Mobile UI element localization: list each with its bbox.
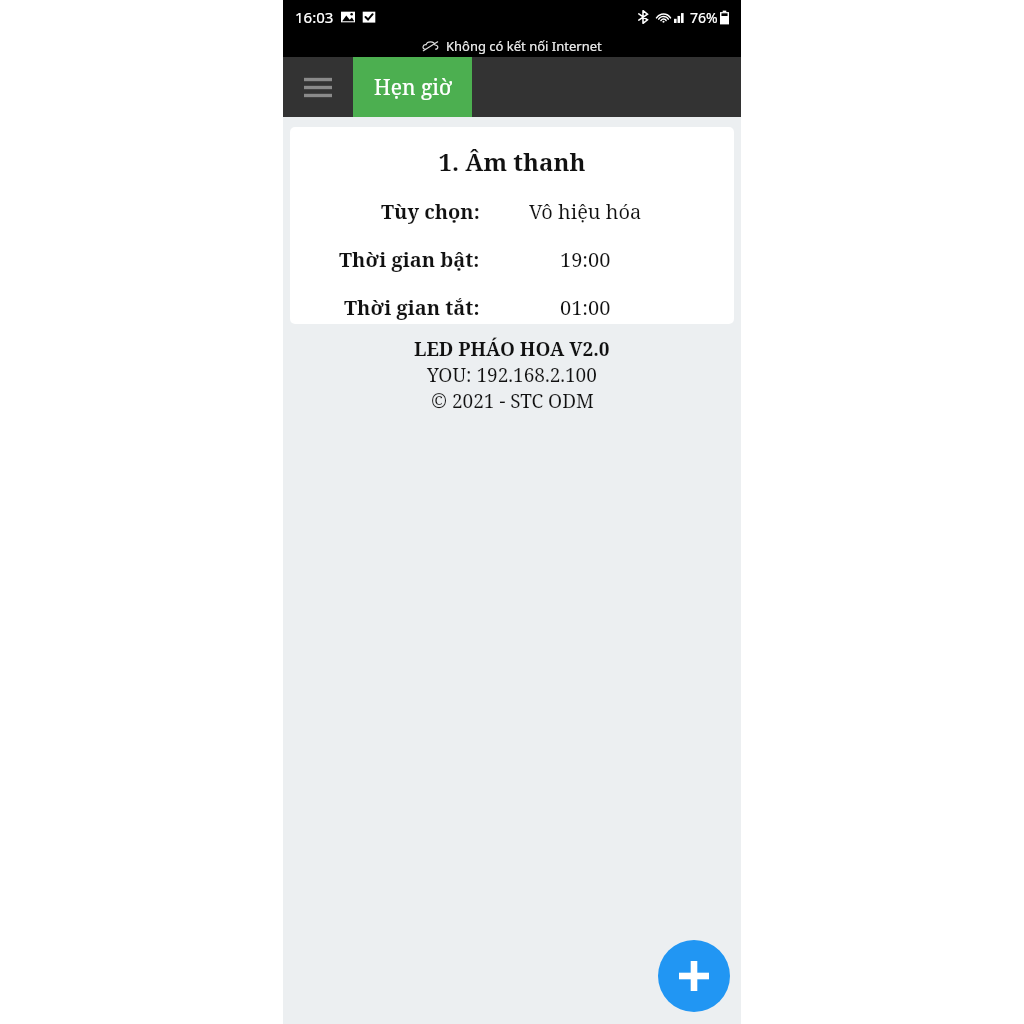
staticText: Thời gian bật:	[339, 246, 480, 273]
button[interactable]: Hẹn giờ	[353, 57, 472, 117]
staticText: LED PHÁO HOA V2.0	[414, 336, 610, 362]
staticText: 1. Âm thanh	[290, 145, 734, 178]
button[interactable]: 1. Âm thanh	[290, 127, 734, 324]
button[interactable]: Menu	[283, 57, 353, 117]
staticText: Tùy chọn:	[381, 198, 480, 225]
staticText: Không có kết nối Internet	[446, 37, 602, 55]
staticText: Vô hiệu hóa	[529, 198, 642, 225]
button[interactable]: Add	[658, 940, 730, 1012]
staticText: Hẹn giờ	[374, 73, 452, 102]
staticText: 01:00	[560, 294, 611, 321]
staticText: YOU: 192.168.2.100	[427, 362, 597, 388]
staticText: Thời gian tắt:	[344, 294, 480, 321]
staticText: 76%	[690, 8, 718, 27]
staticText: 19:00	[560, 246, 611, 273]
staticText: 16:03	[295, 7, 334, 27]
staticText: © 2021 - STC ODM	[431, 388, 594, 414]
